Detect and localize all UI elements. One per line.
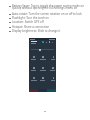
staticText: quickly without opening the full setting…: [12, 6, 80, 10]
button[interactable]: Quick setting tile: [29, 55, 38, 63]
button[interactable]: Quick setting tile: [38, 66, 47, 74]
button[interactable]: Quick setting tile: [38, 76, 47, 84]
button[interactable]: Quick setting tile: [48, 66, 57, 74]
staticText: Location: Switch GPS off: [12, 20, 49, 24]
button[interactable]: Quick setting tile: [38, 55, 47, 63]
staticText: Auto-rotate: Turn the screen rotation on…: [12, 12, 84, 16]
button[interactable]: Quick setting tile: [29, 76, 38, 84]
button[interactable]: Quick setting tile: [48, 55, 57, 63]
button[interactable]: Brightness slider: [31, 48, 54, 51]
staticText: Display brightness: Slide to change it: [12, 29, 73, 33]
staticText: Battery Saver: Tap to toggle the power s…: [12, 4, 86, 8]
button[interactable]: Quick setting tile: [48, 76, 57, 84]
staticText: Flashlight: Turn the torch on: [12, 16, 53, 20]
staticText: Hotspot: Share a connection: [12, 25, 59, 29]
button[interactable]: Quick setting tile: [29, 66, 38, 74]
button[interactable]: Quick settings screenshot: [29, 38, 56, 92]
button[interactable]: Wi-Fi toggle: [42, 41, 44, 43]
